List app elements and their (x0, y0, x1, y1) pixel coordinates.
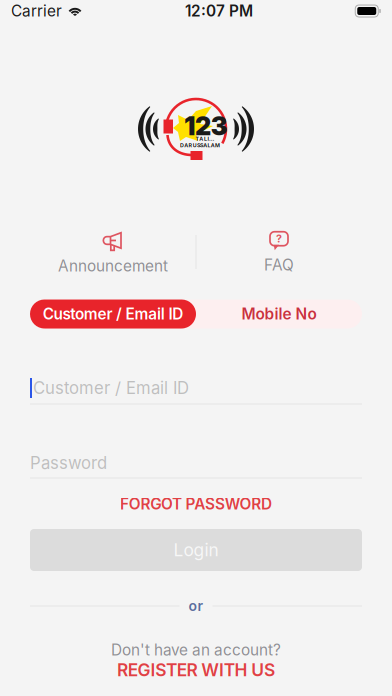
button[interactable]: Customer / Email ID (30, 299, 196, 328)
staticText: REGISTER WITH US (117, 659, 275, 680)
staticText: or (188, 597, 203, 614)
staticText: ? (276, 232, 282, 245)
button[interactable]: Mobile No (196, 299, 362, 328)
button[interactable]: Announcement (30, 227, 196, 279)
button[interactable]: REGISTER WITH US (117, 659, 275, 681)
staticText: 12:07 PM (185, 2, 253, 20)
staticText: Customer / Email ID (33, 378, 189, 398)
button[interactable]: FORGOT PASSWORD (30, 493, 362, 515)
staticText: TALIAN (195, 135, 218, 142)
staticText: FAQ (264, 256, 294, 274)
staticText: FORGOT PASSWORD (120, 495, 272, 513)
staticText: Don't have an account? (111, 641, 281, 659)
button[interactable]: ? (196, 227, 362, 279)
staticText: Mobile No (241, 305, 316, 323)
staticText: Carrier (11, 2, 62, 20)
staticText: DARUSSALAM (180, 142, 220, 148)
staticText: Announcement (58, 257, 168, 275)
staticText: Customer / Email ID (43, 305, 183, 323)
staticText: 123 (184, 111, 228, 141)
staticText: Login (173, 539, 218, 560)
staticText: Password (30, 453, 107, 473)
